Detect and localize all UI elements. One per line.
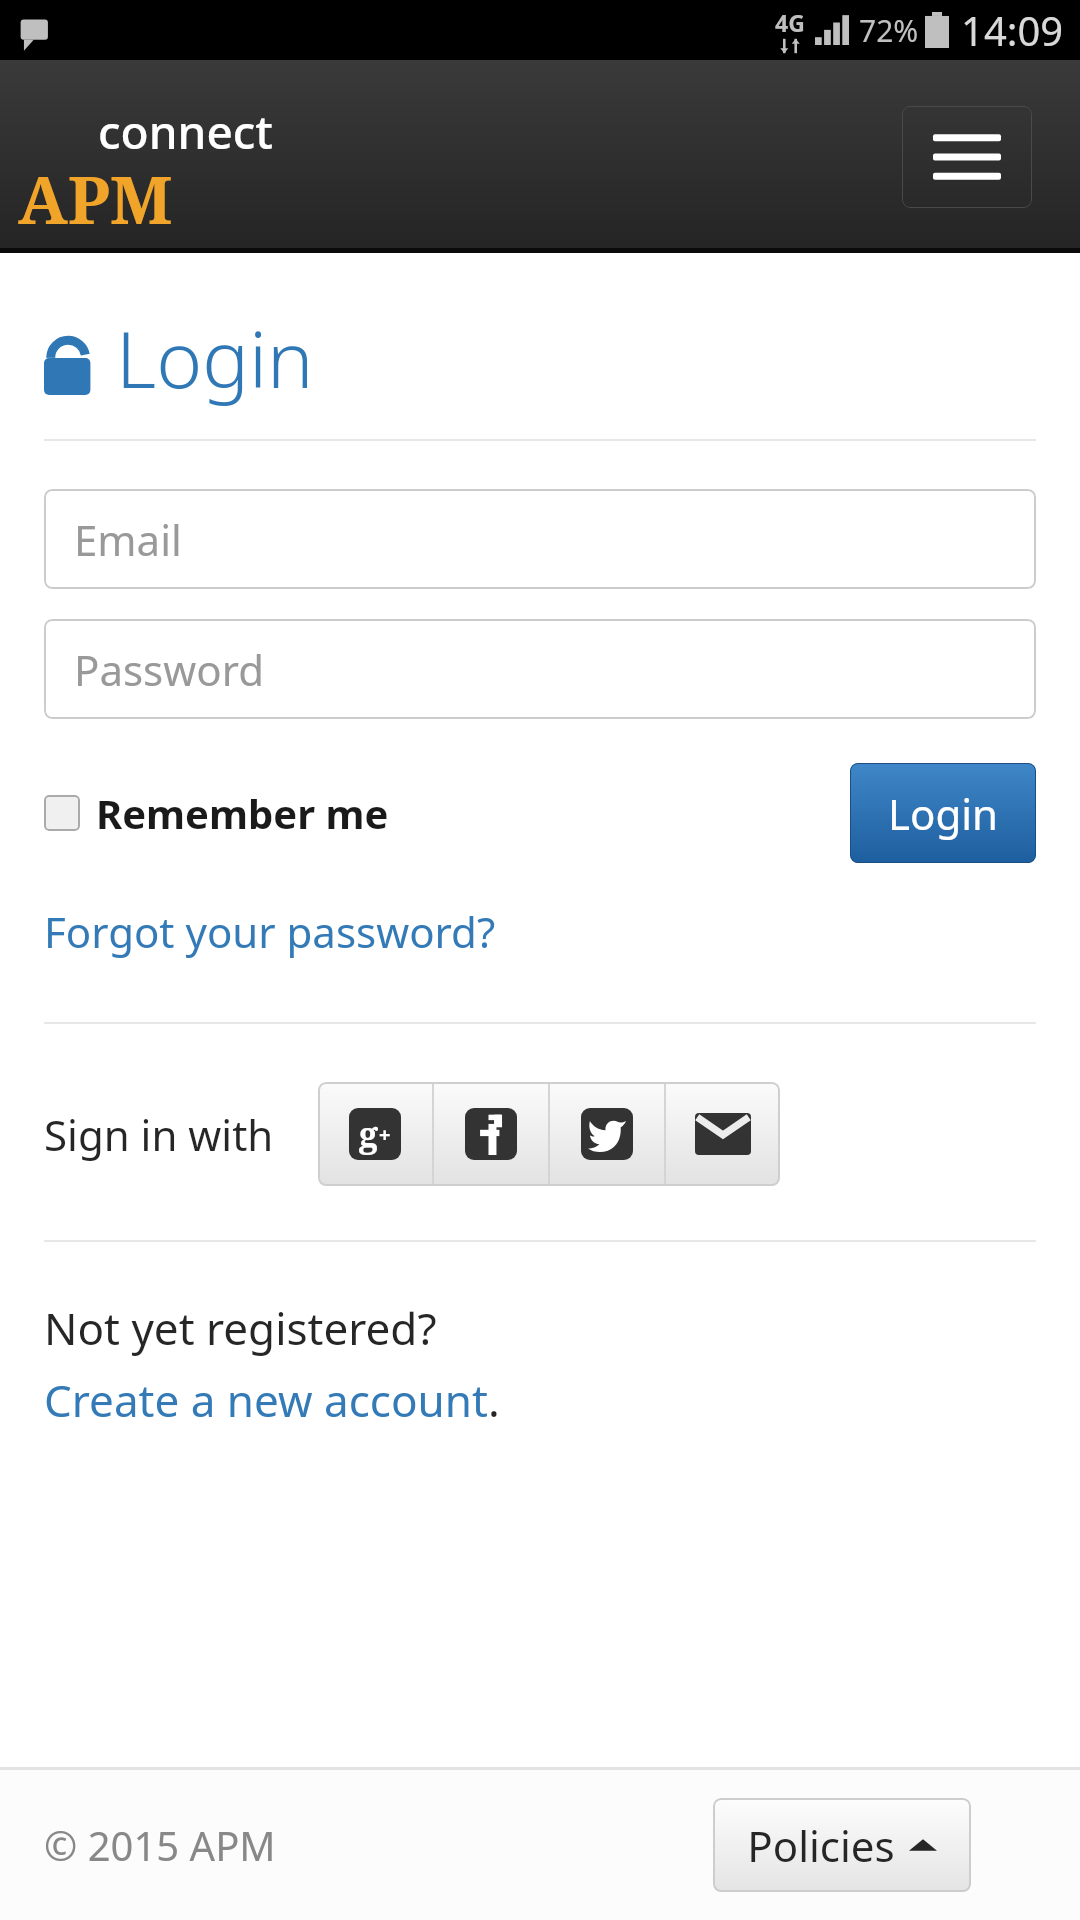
button[interactable]: Password bbox=[44, 619, 1036, 719]
button[interactable]: Sign in with Email bbox=[666, 1082, 780, 1186]
staticText: Password bbox=[74, 641, 264, 698]
button[interactable]: Sign in with Google bbox=[318, 1082, 432, 1186]
staticText: Sign in with bbox=[44, 1106, 274, 1163]
staticText: g bbox=[359, 1111, 379, 1157]
staticText: © 2015 APM bbox=[44, 1818, 276, 1872]
button[interactable]: Sign in with Facebook bbox=[434, 1082, 548, 1186]
staticText: 14:09 bbox=[961, 3, 1064, 57]
staticText: + bbox=[379, 1121, 391, 1148]
staticText: Login bbox=[116, 305, 314, 411]
staticText: Email bbox=[74, 511, 182, 568]
staticText: Login bbox=[888, 785, 999, 842]
staticText: . bbox=[488, 1370, 500, 1430]
staticText: Not yet registered? bbox=[44, 1298, 437, 1358]
button[interactable]: Email bbox=[44, 489, 1036, 589]
staticText: Remember me bbox=[96, 786, 389, 840]
staticText: Forgot your password? bbox=[44, 903, 496, 960]
staticText: APM bbox=[18, 153, 173, 243]
staticText: Create a new account bbox=[44, 1370, 488, 1430]
button[interactable]: Forgot your password? bbox=[44, 903, 496, 960]
staticText: connect bbox=[98, 100, 273, 163]
staticText: Policies bbox=[747, 1817, 895, 1874]
button[interactable]: Sign in with Twitter bbox=[550, 1082, 664, 1186]
button[interactable]: Menu bbox=[902, 106, 1032, 208]
button[interactable]: Login bbox=[850, 763, 1036, 863]
staticText: 72% bbox=[859, 10, 919, 51]
staticText: 4G bbox=[775, 7, 805, 38]
button[interactable]: Create a new account bbox=[44, 1370, 488, 1430]
button[interactable]: Remember me bbox=[44, 786, 389, 840]
button[interactable]: Policies bbox=[713, 1798, 971, 1892]
